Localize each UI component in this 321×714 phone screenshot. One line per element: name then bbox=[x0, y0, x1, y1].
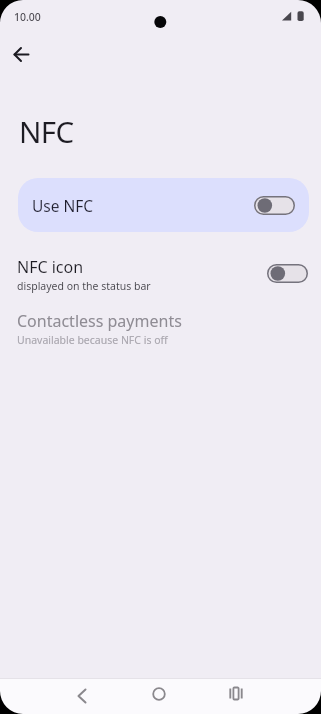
staticText: Use NFC bbox=[32, 195, 94, 216]
staticText: Contactless payments bbox=[17, 310, 182, 332]
button[interactable] bbox=[220, 680, 252, 712]
staticText: 10.00 bbox=[14, 10, 41, 24]
button[interactable] bbox=[64, 680, 96, 712]
button[interactable]: NFC icon bbox=[0, 252, 321, 294]
staticText: displayed on the status bar bbox=[17, 279, 151, 293]
button[interactable] bbox=[8, 41, 35, 68]
staticText: NFC icon bbox=[17, 256, 84, 278]
staticText: NFC bbox=[19, 111, 74, 151]
staticText: Unavailable because NFC is off bbox=[17, 333, 168, 347]
button[interactable] bbox=[143, 680, 175, 712]
button[interactable]: Use NFC bbox=[18, 178, 309, 232]
